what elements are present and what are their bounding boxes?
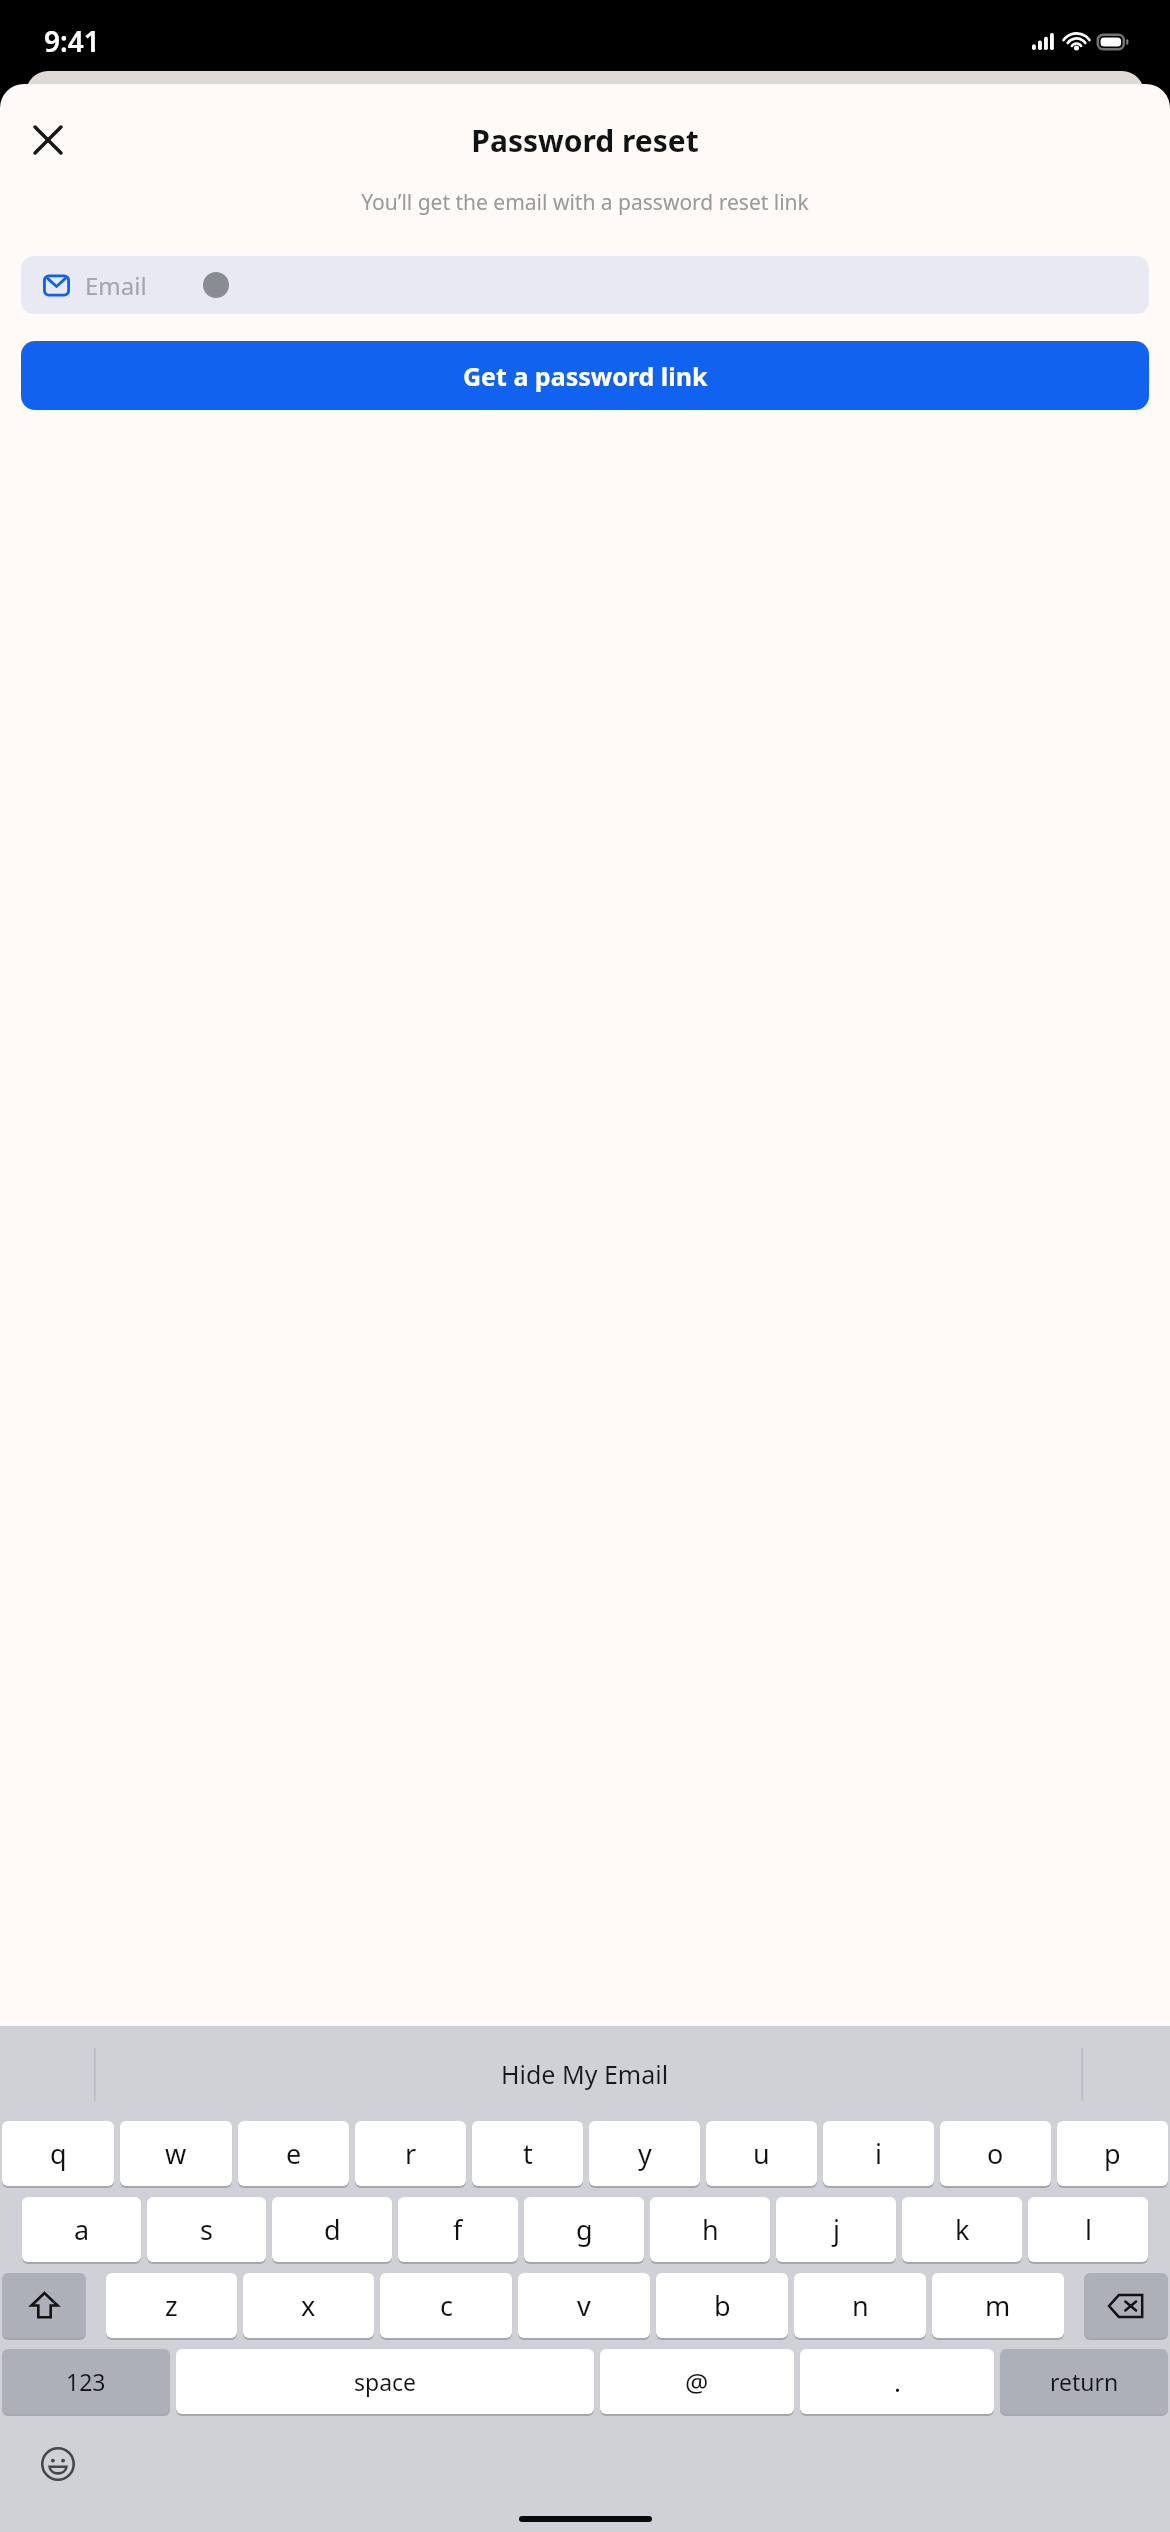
staticText: v [577,2287,591,2324]
staticText: n [852,2287,869,2324]
button[interactable]: e [238,2121,349,2186]
button[interactable]: k [902,2197,1022,2262]
staticText: m [985,2287,1011,2324]
staticText: l [1085,2211,1092,2248]
button[interactable]: a [22,2197,141,2262]
staticText: d [324,2211,341,2248]
button[interactable]: f [398,2197,518,2262]
button[interactable]: Emoji [32,2438,84,2490]
button[interactable]: y [589,2121,700,2186]
button[interactable]: x [243,2273,374,2338]
staticText: f [453,2211,463,2248]
button[interactable]: p [1057,2121,1168,2186]
button[interactable]: @ [600,2349,794,2414]
button[interactable]: . [800,2349,994,2414]
staticText: 123 [66,2366,106,2397]
staticText: j [833,2211,840,2248]
button[interactable]: i [823,2121,934,2186]
button[interactable]: w [120,2121,232,2186]
button[interactable]: u [706,2121,817,2186]
staticText: . [894,2364,901,2399]
button[interactable]: Hide My Email [501,2057,669,2091]
staticText: q [50,2135,67,2172]
button[interactable]: d [272,2197,392,2262]
button[interactable]: Backspace [1084,2273,1168,2338]
button[interactable]: t [472,2121,583,2186]
staticText: Password reset [471,120,699,161]
staticText: y [638,2135,652,2172]
button[interactable]: b [656,2273,788,2338]
staticText: e [286,2135,302,2172]
staticText: o [987,2135,1004,2172]
button[interactable]: r [355,2121,466,2186]
button[interactable]: n [794,2273,926,2338]
staticText: i [875,2135,882,2172]
button[interactable]: Email [21,256,1149,314]
staticText: u [753,2135,770,2172]
staticText: Get a password link [463,359,708,393]
staticText: g [576,2211,593,2248]
button[interactable]: return [1000,2349,1168,2414]
staticText: return [1050,2366,1119,2397]
staticText: t [523,2135,533,2172]
button[interactable]: c [380,2273,512,2338]
button[interactable]: h [650,2197,770,2262]
button[interactable]: space [176,2349,594,2414]
button[interactable]: s [147,2197,266,2262]
button[interactable]: j [776,2197,896,2262]
staticText: Hide My Email [501,2057,669,2091]
staticText: 9:41 [44,22,100,60]
staticText: s [200,2211,213,2248]
staticText: c [440,2287,453,2324]
staticText: b [714,2287,731,2324]
button[interactable]: Get a password link [21,341,1149,410]
staticText: p [1104,2135,1121,2172]
button[interactable]: g [524,2197,644,2262]
button[interactable]: o [940,2121,1051,2186]
staticText: w [165,2135,187,2172]
staticText: r [405,2135,417,2172]
button[interactable]: m [932,2273,1064,2338]
button[interactable]: Close [14,106,82,174]
staticText: You’ll get the email with a password res… [24,188,1146,217]
staticText: x [301,2287,316,2324]
button[interactable]: l [1028,2197,1148,2262]
button[interactable]: z [106,2273,237,2338]
button[interactable]: q [2,2121,114,2186]
button[interactable]: Shift [2,2273,86,2338]
staticText: a [74,2211,90,2248]
button[interactable]: 123 [2,2349,170,2414]
staticText: space [354,2366,417,2397]
staticText: z [165,2287,178,2324]
staticText: k [955,2211,970,2248]
button[interactable]: v [518,2273,650,2338]
staticText: h [702,2211,719,2248]
staticText: @ [685,2364,709,2399]
staticText: Email [85,269,147,302]
